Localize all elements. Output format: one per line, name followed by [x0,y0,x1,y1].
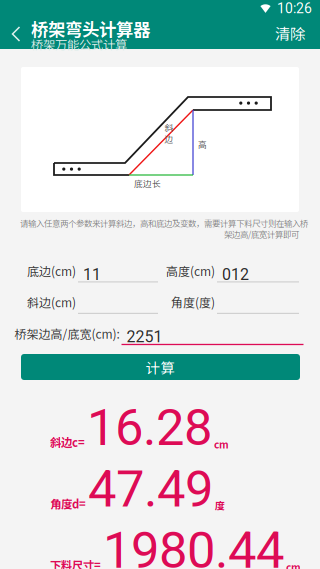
staticText: 桥架边高/底宽(cm): [14,325,119,342]
staticText: 桥架万能公式计算 [31,35,127,53]
staticText: 角度d= [50,495,86,512]
staticText: cm [214,437,229,451]
staticText: 47.49 [88,459,213,519]
staticText: 度 [215,498,225,513]
staticText: 下料尺寸= [50,557,101,569]
staticText: 角度(度) [171,293,215,311]
staticText: 斜 [164,121,173,133]
staticText: cm [286,560,301,569]
staticText: 012 [222,265,249,284]
staticText: 计算 [145,356,175,378]
staticText: 请输入任意两个参数来计算斜边，高和底边及变数，需要计算下料尺寸则在输入桥 [20,217,308,229]
button[interactable]: Back [0,17,34,51]
staticText: 边 [164,132,173,145]
staticText: 1980.44 [103,521,284,569]
staticText: 清除 [275,22,305,44]
staticText: 斜边c= [50,434,85,450]
staticText: 11 [83,265,101,284]
button[interactable]: 清除 [267,17,313,49]
staticText: 架边高/底宽计算即可 [224,228,299,240]
staticText: 高度(cm) [166,262,215,279]
staticText: 底边长 [134,177,161,189]
staticText: 底边(cm) [27,262,76,279]
staticText [222,296,226,315]
staticText: 桥架弯头计算器 [31,16,150,41]
staticText: 斜边(cm) [27,293,76,311]
staticText: 高 [198,138,207,150]
staticText: 10:26 [277,0,312,17]
staticText: 2251 [126,327,162,346]
button[interactable]: 计算 [21,354,300,380]
staticText [83,296,87,315]
staticText: 16.28 [87,398,212,457]
